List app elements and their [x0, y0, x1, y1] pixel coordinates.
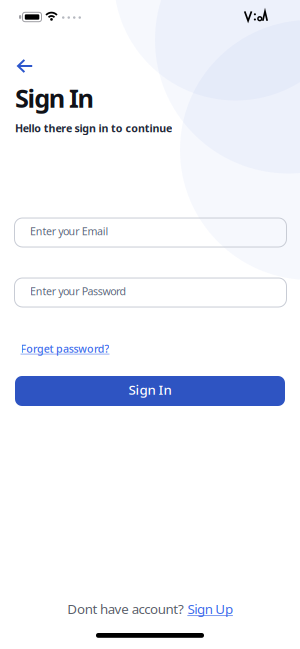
- button[interactable]: Sign In: [15, 376, 285, 406]
- button[interactable]: Forget password?: [20, 341, 109, 356]
- staticText: Sign In: [15, 81, 94, 115]
- staticText: Dont have account?: [67, 600, 184, 618]
- staticText: Sign In: [128, 381, 171, 398]
- button[interactable]: Enter your Password: [14, 278, 286, 307]
- staticText: Hello there sign in to continue: [15, 121, 172, 135]
- button[interactable]: Enter your Email: [14, 218, 286, 247]
- button[interactable]: [17, 59, 33, 73]
- staticText: Enter your Password: [30, 284, 127, 298]
- button[interactable]: Dont have account?: [67, 600, 233, 618]
- staticText: Forget password?: [20, 341, 109, 356]
- staticText: Enter your Email: [30, 224, 108, 238]
- staticText: Sign Up: [187, 600, 233, 618]
